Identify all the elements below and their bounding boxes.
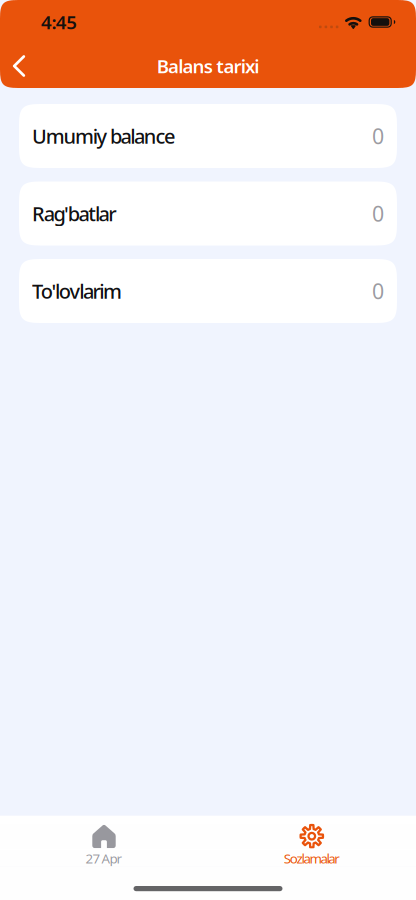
staticText: Rag'batlar xyxy=(32,200,116,227)
staticText: To'lovlarim xyxy=(32,278,122,304)
staticText: 0 xyxy=(372,122,384,150)
staticText: 0 xyxy=(372,277,384,305)
staticText: 27 Apr xyxy=(86,850,122,867)
button[interactable]: Rag'batlar xyxy=(19,181,397,245)
staticText: 4:45 xyxy=(41,10,77,34)
button[interactable]: To'lovlarim xyxy=(19,259,397,323)
button[interactable]: Sozlamalar xyxy=(208,817,416,866)
staticText: Umumiy balance xyxy=(32,123,175,149)
button[interactable]: Back xyxy=(0,44,38,88)
button[interactable]: Umumiy balance xyxy=(19,104,397,168)
staticText: 0 xyxy=(372,199,384,228)
staticText: Balans tarixi xyxy=(157,54,259,78)
staticText: Sozlamalar xyxy=(284,850,340,867)
button[interactable]: 27 Apr xyxy=(0,817,208,866)
